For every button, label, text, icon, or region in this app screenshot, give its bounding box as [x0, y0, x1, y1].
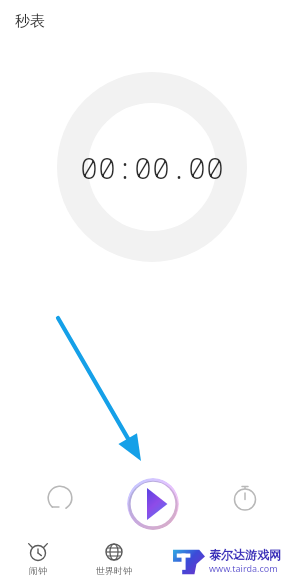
button[interactable]: Start — [127, 478, 179, 530]
button[interactable]: Reset — [38, 476, 82, 520]
staticText: 泰尔达游戏网 — [209, 547, 281, 562]
button[interactable]: Lap — [223, 476, 267, 520]
staticText: 00:00.00 — [80, 147, 224, 188]
button[interactable]: 闹钟 — [0, 532, 76, 586]
staticText: www.tairda.com — [209, 562, 278, 574]
staticText: 秒表 — [15, 12, 45, 31]
button[interactable]: 世界时钟 — [76, 532, 152, 586]
staticText: 世界时钟 — [96, 565, 132, 576]
staticText: 闹钟 — [29, 565, 47, 576]
